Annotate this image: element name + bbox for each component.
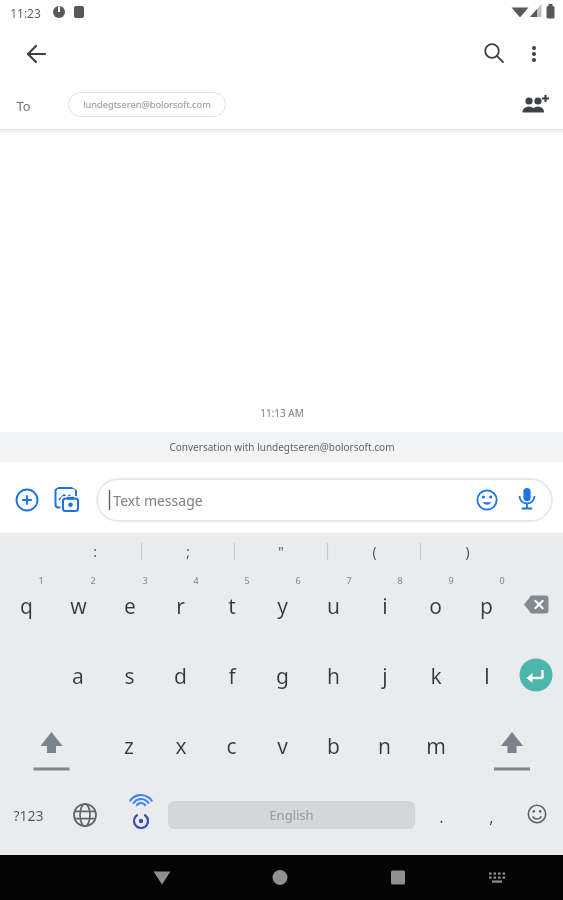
button[interactable]: English — [168, 801, 415, 829]
staticText: i — [382, 592, 388, 621]
button[interactable]: b — [308, 710, 359, 780]
staticText: w — [70, 592, 87, 621]
staticText: ; — [186, 543, 190, 561]
button[interactable]: r — [155, 570, 206, 640]
staticText: . — [439, 806, 444, 828]
button[interactable] — [9, 479, 45, 515]
button[interactable] — [47, 486, 83, 522]
button[interactable]: x — [155, 710, 206, 780]
staticText: 5 — [244, 574, 250, 586]
button[interactable]: ) — [444, 533, 490, 570]
button[interactable]: p — [461, 570, 512, 640]
button[interactable] — [62, 780, 108, 850]
staticText: d — [174, 662, 187, 691]
staticText: 7 — [346, 574, 352, 586]
staticText: s — [124, 662, 135, 691]
staticText: b — [327, 732, 340, 761]
button[interactable] — [16, 33, 58, 75]
staticText: r — [176, 592, 185, 621]
button[interactable] — [118, 780, 164, 850]
staticText: English — [269, 806, 314, 824]
button[interactable]: i — [359, 570, 410, 640]
button[interactable]: f — [206, 640, 257, 710]
button[interactable]: g — [257, 640, 308, 710]
staticText: 6 — [295, 574, 301, 586]
button[interactable]: y — [257, 570, 308, 640]
button[interactable]: s — [104, 640, 155, 710]
staticText: 2 — [90, 574, 96, 586]
staticText: h — [327, 662, 340, 691]
button[interactable] — [512, 570, 563, 640]
staticText: Text message — [113, 491, 203, 510]
button[interactable] — [374, 855, 422, 900]
staticText: To — [16, 97, 31, 115]
button[interactable]: o — [410, 570, 461, 640]
staticText: u — [327, 592, 340, 621]
button[interactable]: e — [104, 570, 155, 640]
button[interactable]: lundegtseren@bolorsoft.com — [68, 92, 226, 117]
button[interactable]: q — [0, 570, 52, 640]
button[interactable] — [461, 710, 563, 780]
button[interactable]: j — [359, 640, 410, 710]
button[interactable]: c — [206, 710, 257, 780]
staticText: 1 — [38, 574, 44, 586]
button[interactable]: l — [461, 640, 512, 710]
button[interactable] — [256, 855, 304, 900]
button[interactable]: a — [52, 640, 104, 710]
staticText: 0 — [499, 574, 505, 586]
staticText: 8 — [397, 574, 403, 586]
staticText: 9 — [448, 574, 454, 586]
staticText: " — [278, 543, 284, 561]
button[interactable]: " — [258, 533, 304, 570]
staticText: : — [93, 543, 97, 561]
staticText: l — [484, 662, 490, 691]
button[interactable]: u — [308, 570, 359, 640]
staticText: Conversation with lundegtseren@bolorsoft… — [169, 440, 395, 454]
button[interactable] — [512, 640, 563, 710]
button[interactable]: k — [410, 640, 461, 710]
button[interactable]: z — [103, 710, 155, 780]
staticText: j — [382, 662, 388, 691]
staticText: e — [124, 592, 136, 621]
staticText: t — [228, 592, 236, 621]
button[interactable]: : — [72, 533, 118, 570]
button[interactable]: t — [206, 570, 257, 640]
staticText: q — [20, 592, 33, 621]
button[interactable]: . — [419, 780, 463, 850]
button[interactable]: n — [359, 710, 410, 780]
staticText: z — [124, 732, 134, 761]
staticText: 11:13 AM — [260, 406, 304, 420]
staticText: m — [426, 732, 446, 761]
button[interactable] — [513, 84, 555, 126]
button[interactable]: w — [52, 570, 104, 640]
staticText: g — [276, 662, 289, 691]
button[interactable]: h — [308, 640, 359, 710]
button[interactable] — [513, 33, 555, 75]
button[interactable]: Text message — [96, 478, 553, 522]
button[interactable] — [515, 780, 559, 850]
staticText: ?123 — [13, 806, 44, 825]
staticText: v — [277, 732, 288, 761]
button[interactable]: ?123 — [4, 780, 52, 850]
button[interactable]: ; — [165, 533, 211, 570]
staticText: y — [277, 592, 288, 621]
staticText: 4 — [193, 574, 199, 586]
button[interactable] — [473, 855, 521, 900]
button[interactable]: ( — [351, 533, 397, 570]
staticText: f — [228, 662, 236, 691]
button[interactable]: , — [469, 780, 513, 850]
button[interactable] — [473, 33, 515, 75]
button[interactable] — [138, 855, 186, 900]
button[interactable]: v — [257, 710, 308, 780]
staticText: 3 — [142, 574, 148, 586]
staticText: , — [489, 806, 494, 828]
staticText: a — [72, 662, 84, 691]
button[interactable]: d — [155, 640, 206, 710]
staticText: o — [429, 592, 442, 621]
staticText: lundegtseren@bolorsoft.com — [83, 98, 211, 111]
staticText: x — [175, 732, 187, 761]
staticText: ( — [372, 543, 377, 561]
staticText: p — [480, 592, 493, 621]
button[interactable]: m — [410, 710, 461, 780]
button[interactable] — [0, 710, 103, 780]
